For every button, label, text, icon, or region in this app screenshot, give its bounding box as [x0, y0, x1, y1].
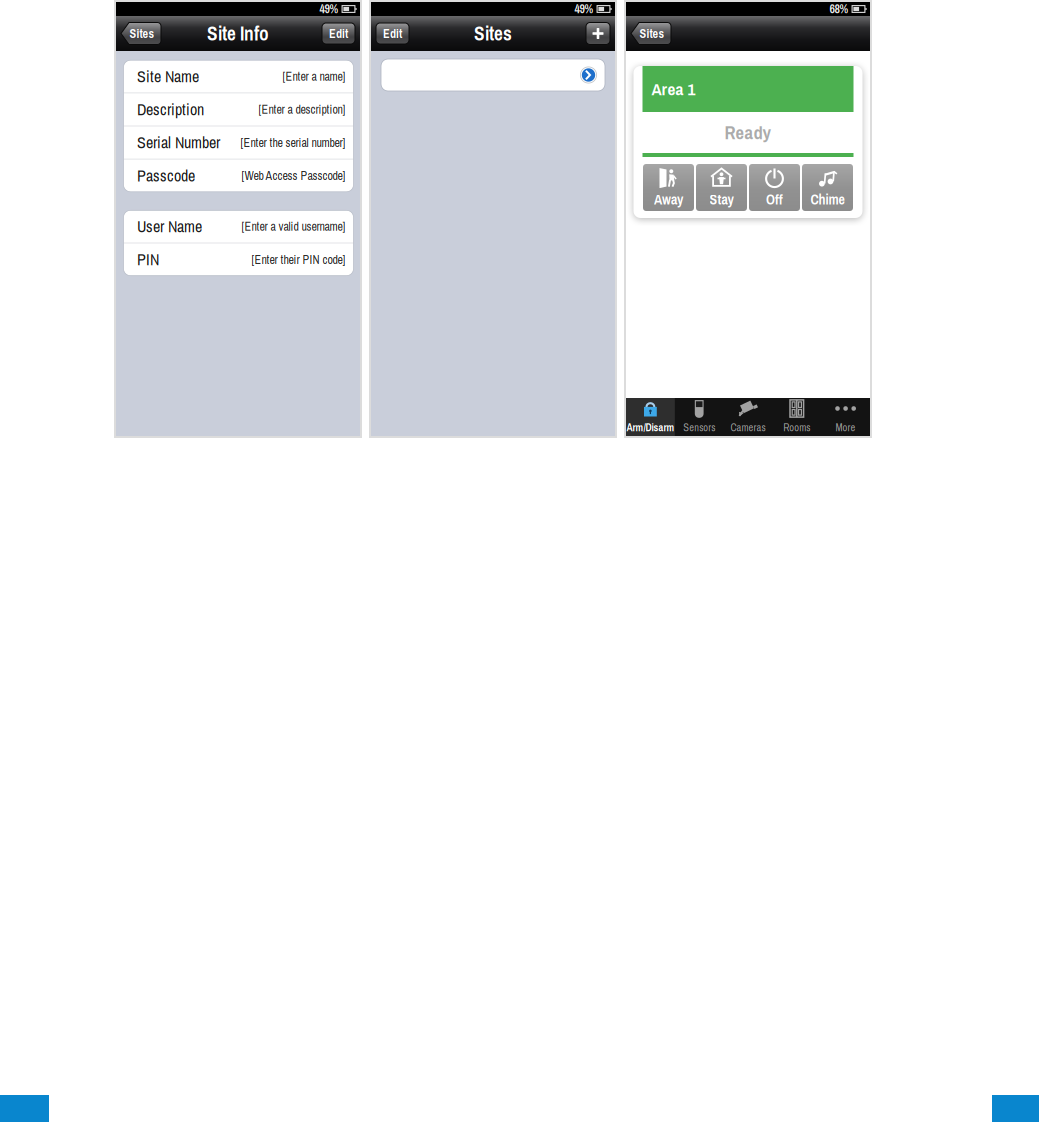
staticText: Sensors [683, 420, 715, 434]
button[interactable]: Serial Number [123, 126, 353, 159]
staticText: Ready [724, 120, 771, 145]
staticText: Edit [383, 25, 402, 42]
staticText: [Enter the serial number] [240, 134, 345, 151]
staticText: Serial Number [137, 132, 220, 153]
staticText: Rooms [783, 420, 810, 434]
staticText: Passcode [137, 165, 195, 186]
staticText: Stay [709, 190, 733, 209]
button[interactable]: Chime [802, 164, 853, 211]
staticText: [Web Access Passcode] [241, 168, 345, 184]
staticText: Site Name [137, 66, 199, 87]
staticText: Description [137, 99, 204, 120]
staticText: 49% [319, 1, 338, 17]
button[interactable]: Description [123, 93, 353, 126]
staticText: Sites [129, 25, 154, 42]
button[interactable]: PIN [123, 243, 353, 276]
button[interactable]: Passcode [123, 159, 353, 192]
staticText: [Enter a valid username] [241, 218, 345, 235]
button[interactable]: Add site [586, 22, 610, 44]
staticText: Off [766, 190, 783, 209]
button[interactable]: User Name [123, 210, 353, 243]
staticText: Sites [639, 25, 664, 42]
staticText: Site Info [207, 20, 269, 46]
button[interactable]: Edit [376, 23, 409, 44]
staticText: [Enter a description] [258, 101, 345, 118]
button[interactable]: Sites [631, 22, 671, 44]
button[interactable]: Sites [121, 22, 161, 44]
staticText: 49% [574, 1, 593, 17]
button[interactable]: Arm/Disarm [626, 398, 675, 436]
staticText: Away [654, 190, 683, 209]
button[interactable]: More [821, 398, 870, 436]
button[interactable]: Cameras [724, 398, 772, 436]
staticText: 68% [829, 1, 848, 17]
button[interactable]: Edit [322, 23, 355, 44]
staticText: [Enter a name] [282, 68, 345, 84]
staticText: Edit [329, 25, 348, 42]
staticText: Arm/Disarm [626, 420, 674, 434]
button[interactable] [381, 59, 605, 91]
button[interactable]: Off [749, 164, 800, 211]
staticText: More [836, 420, 856, 434]
staticText: Cameras [730, 420, 765, 434]
button[interactable]: Sensors [675, 398, 724, 436]
staticText: User Name [137, 216, 202, 237]
staticText: Chime [810, 190, 844, 209]
button[interactable]: Stay [696, 164, 747, 211]
button[interactable]: Rooms [772, 398, 821, 436]
button[interactable]: Away [643, 164, 694, 211]
button[interactable]: Site Name [123, 60, 353, 92]
staticText: [Enter their PIN code] [251, 251, 345, 268]
staticText: PIN [137, 249, 159, 270]
staticText: Area 1 [651, 77, 695, 101]
staticText: Sites [474, 20, 512, 46]
